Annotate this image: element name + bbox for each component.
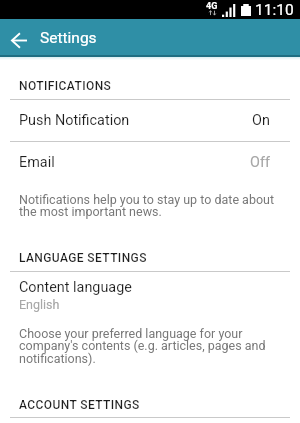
staticText: Notifications help you to stay up to dat… bbox=[19, 192, 278, 219]
staticText: Choose your preferred language for your … bbox=[19, 326, 278, 366]
staticText: NOTIFICATIONS bbox=[19, 79, 112, 93]
button[interactable]: Content language bbox=[0, 279, 300, 312]
button[interactable]: Email bbox=[0, 142, 300, 183]
staticText: Push Notification bbox=[19, 112, 130, 129]
staticText: Settings bbox=[40, 29, 97, 47]
staticText: Content language bbox=[19, 279, 132, 296]
button[interactable]: Push Notification bbox=[0, 100, 300, 141]
staticText: On bbox=[252, 112, 270, 129]
staticText: LANGUAGE SETTINGS bbox=[19, 251, 147, 265]
staticText: Email bbox=[19, 154, 55, 171]
button[interactable]: Back bbox=[0, 19, 38, 57]
staticText: 4G bbox=[206, 1, 218, 12]
staticText: English bbox=[19, 297, 60, 312]
staticText: 11:10 bbox=[255, 1, 294, 19]
staticText: Off bbox=[250, 154, 270, 171]
staticText: ACCOUNT SETTINGS bbox=[19, 398, 140, 412]
